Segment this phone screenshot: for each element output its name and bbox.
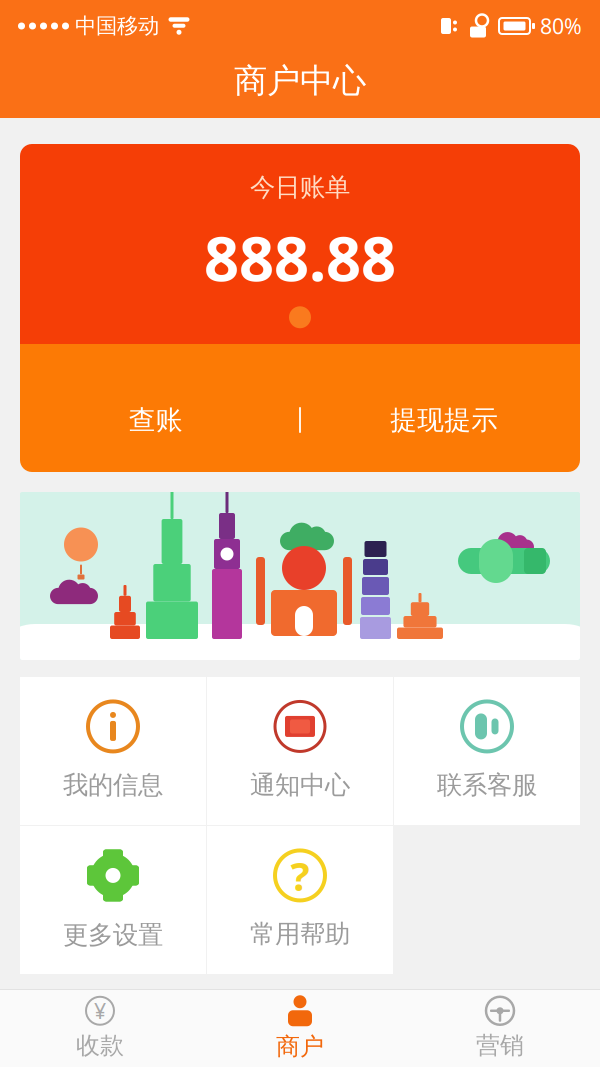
staticText: 常用帮助	[250, 918, 350, 949]
staticText: 80%	[540, 12, 582, 40]
staticText: 今日账单	[250, 172, 350, 203]
button[interactable]: 通知中心	[207, 677, 393, 825]
staticText: 联系客服	[437, 769, 537, 800]
staticText: 商户中心	[234, 60, 366, 101]
button[interactable]: 我的信息	[20, 677, 206, 825]
staticText: 营销	[476, 1031, 524, 1060]
button[interactable]: 更多设置	[20, 826, 206, 974]
staticText: ¥	[94, 997, 106, 1025]
staticText: 我的信息	[63, 769, 163, 800]
button[interactable]: 联系客服	[394, 677, 580, 825]
button[interactable]: 提现提示	[301, 384, 587, 456]
staticText: 更多设置	[63, 919, 163, 950]
staticText: 收款	[76, 1031, 124, 1060]
staticText: 提现提示	[390, 404, 498, 436]
staticText: 中国移动	[75, 13, 159, 39]
staticText: ?	[290, 849, 309, 902]
staticText: 888.88	[204, 217, 396, 298]
button[interactable]: 查账	[12, 384, 299, 456]
button[interactable]: 商户	[200, 990, 400, 1067]
staticText: 通知中心	[250, 769, 350, 800]
button[interactable]: ¥	[0, 990, 200, 1067]
staticText: 商户	[276, 1032, 324, 1061]
button[interactable]: ?	[207, 826, 393, 974]
button[interactable]: 营销	[400, 990, 600, 1067]
staticText: 查账	[129, 404, 183, 436]
